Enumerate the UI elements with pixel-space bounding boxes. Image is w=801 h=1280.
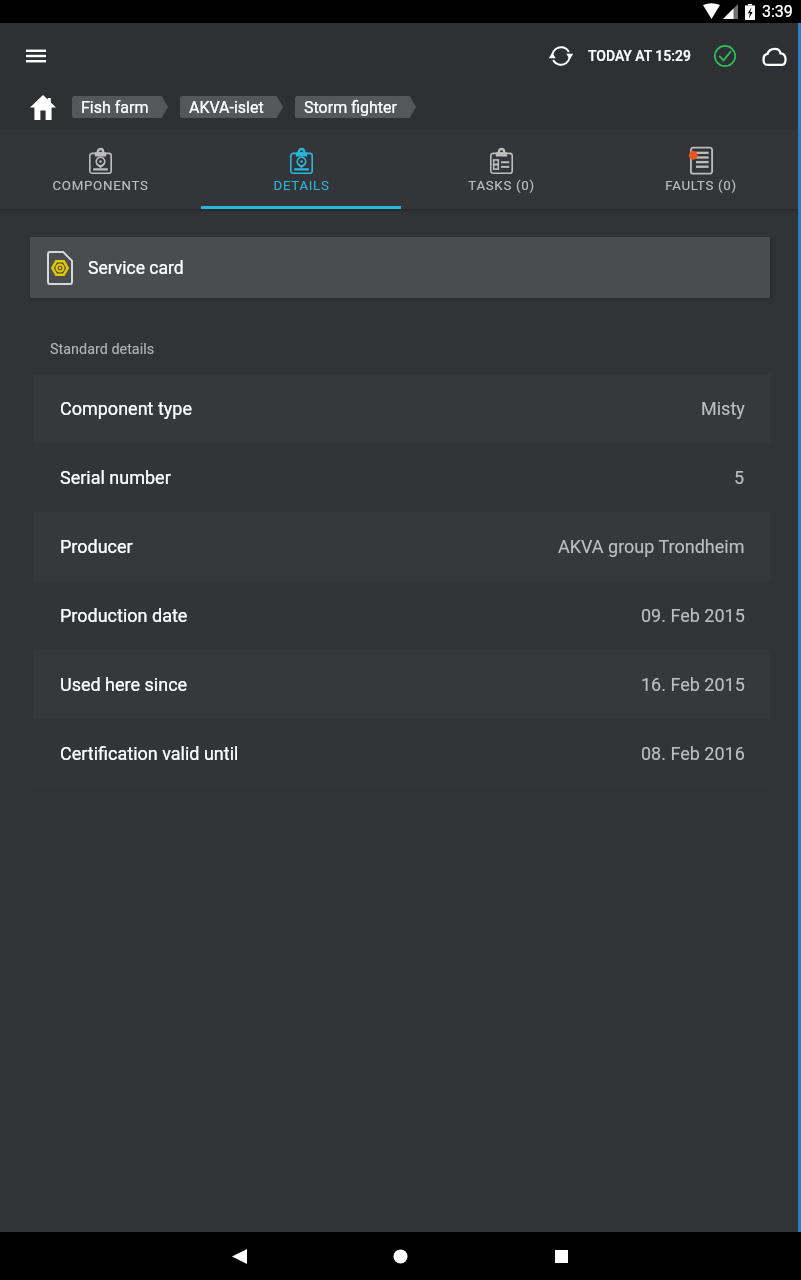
staticText: AKVA-islet xyxy=(189,98,264,117)
button[interactable]: Synced xyxy=(707,38,743,74)
staticText: TODAY AT 15:29 xyxy=(588,48,691,64)
button[interactable]: DETAILS xyxy=(201,130,401,209)
button[interactable]: Back xyxy=(159,1232,320,1280)
staticText: Serial number xyxy=(60,467,171,488)
button[interactable]: Cloud xyxy=(756,38,792,74)
staticText: Used here since xyxy=(60,674,188,695)
button[interactable]: Home xyxy=(320,1232,481,1280)
staticText: AKVA group Trondheim xyxy=(558,536,745,557)
staticText: Certification valid until xyxy=(60,743,239,764)
staticText: Service card xyxy=(88,258,184,279)
button[interactable]: AKVA-islet xyxy=(180,96,283,118)
button[interactable]: Home xyxy=(22,87,63,128)
button[interactable]: FAULTS (0) xyxy=(601,130,801,209)
button[interactable]: Recents xyxy=(481,1232,642,1280)
staticText: Standard details xyxy=(50,341,155,358)
staticText: TASKS (0) xyxy=(468,178,535,194)
staticText: 16. Feb 2015 xyxy=(641,674,745,695)
button[interactable]: Sync xyxy=(541,36,581,76)
staticText: Production date xyxy=(60,605,188,626)
button[interactable]: Component type xyxy=(33,374,770,443)
button[interactable]: Production date xyxy=(33,581,770,650)
button[interactable]: Fish farm xyxy=(72,96,168,118)
staticText: Producer xyxy=(60,536,133,557)
staticText: DETAILS xyxy=(273,178,330,194)
button[interactable]: TASKS (0) xyxy=(401,130,601,209)
staticText: FAULTS (0) xyxy=(665,178,737,194)
staticText: 3:39 xyxy=(762,2,793,21)
button[interactable]: COMPONENTS xyxy=(0,130,201,209)
staticText: Component type xyxy=(60,398,192,419)
button[interactable]: Producer xyxy=(33,512,770,581)
staticText: 5 xyxy=(734,467,745,488)
button[interactable]: Used here since xyxy=(33,650,770,719)
staticText: Misty xyxy=(701,398,745,419)
staticText: Fish farm xyxy=(81,98,149,117)
button[interactable]: Certification valid until xyxy=(33,719,770,788)
button[interactable]: Serial number xyxy=(33,443,770,512)
button[interactable]: Menu xyxy=(12,32,60,80)
button[interactable]: Service card xyxy=(30,237,770,298)
staticText: 08. Feb 2016 xyxy=(641,743,745,764)
button[interactable]: Storm fighter xyxy=(295,96,416,118)
staticText: 09. Feb 2015 xyxy=(641,605,745,626)
staticText: COMPONENTS xyxy=(52,178,149,194)
staticText: Storm fighter xyxy=(304,98,397,117)
